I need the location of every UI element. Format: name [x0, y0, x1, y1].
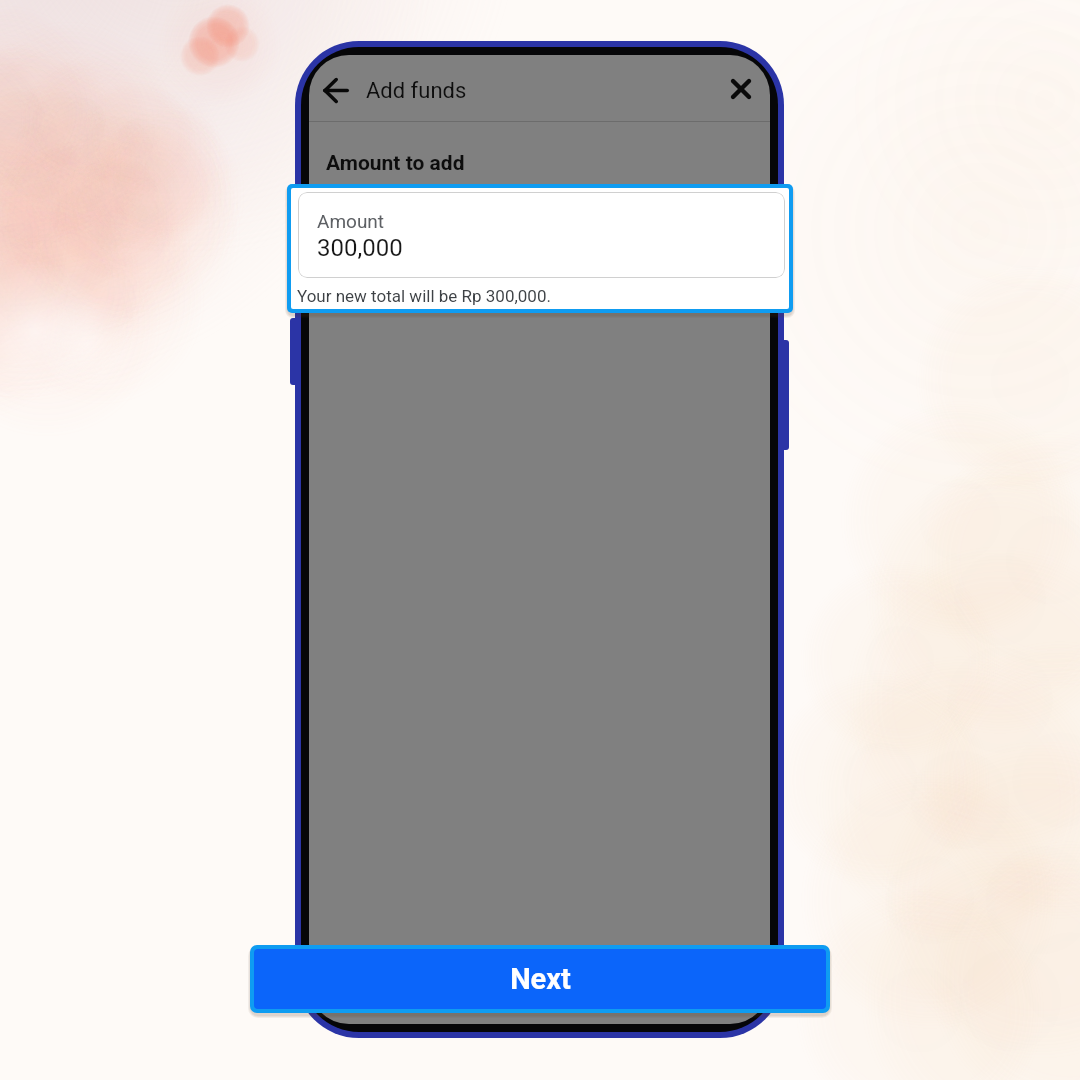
button[interactable]: Next: [254, 949, 826, 1009]
staticText: Add funds: [366, 78, 467, 104]
staticText: 300,000: [317, 234, 403, 262]
button[interactable]: Close: [717, 65, 765, 113]
staticText: Amount to add: [326, 151, 465, 176]
staticText: Your new total will be Rp 300,000.: [297, 286, 551, 306]
button[interactable]: Back: [311, 66, 359, 114]
button[interactable]: Amount: [291, 188, 789, 309]
staticText: Next: [510, 962, 571, 996]
staticText: Amount: [317, 210, 385, 232]
